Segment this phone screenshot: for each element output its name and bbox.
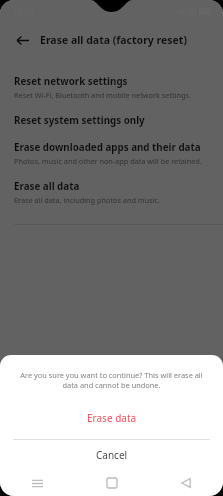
button[interactable]: Back (9, 27, 35, 53)
staticText: Reset network settings (14, 75, 128, 88)
button[interactable]: Erase data (0, 405, 223, 431)
staticText: Erase all data, including photos and mus… (14, 195, 161, 205)
staticText: Erase all data (14, 180, 80, 193)
staticText: Erase all data (factory reset) (40, 33, 187, 47)
staticText: Reset system settings only (14, 114, 145, 127)
button[interactable]: Back (149, 470, 223, 496)
staticText: Reset Wi-Fi, Bluetooth and mobile networ… (14, 90, 192, 100)
button[interactable]: Cancel (0, 440, 223, 470)
staticText: Erase data (87, 411, 137, 425)
button[interactable]: Erase all data (0, 173, 223, 212)
button[interactable]: Reset network settings (0, 68, 223, 107)
staticText: Cancel (96, 448, 128, 462)
button[interactable]: Recent apps (0, 470, 75, 496)
staticText: Are you sure you want to continue? This … (20, 370, 203, 390)
button[interactable]: Reset system settings only (0, 107, 223, 134)
button[interactable]: Erase downloaded apps and their data (0, 134, 223, 173)
staticText: Erase downloaded apps and their data (14, 141, 201, 154)
staticText: Photos, music and other non-app data wil… (14, 156, 202, 166)
button[interactable]: Home (75, 470, 149, 496)
